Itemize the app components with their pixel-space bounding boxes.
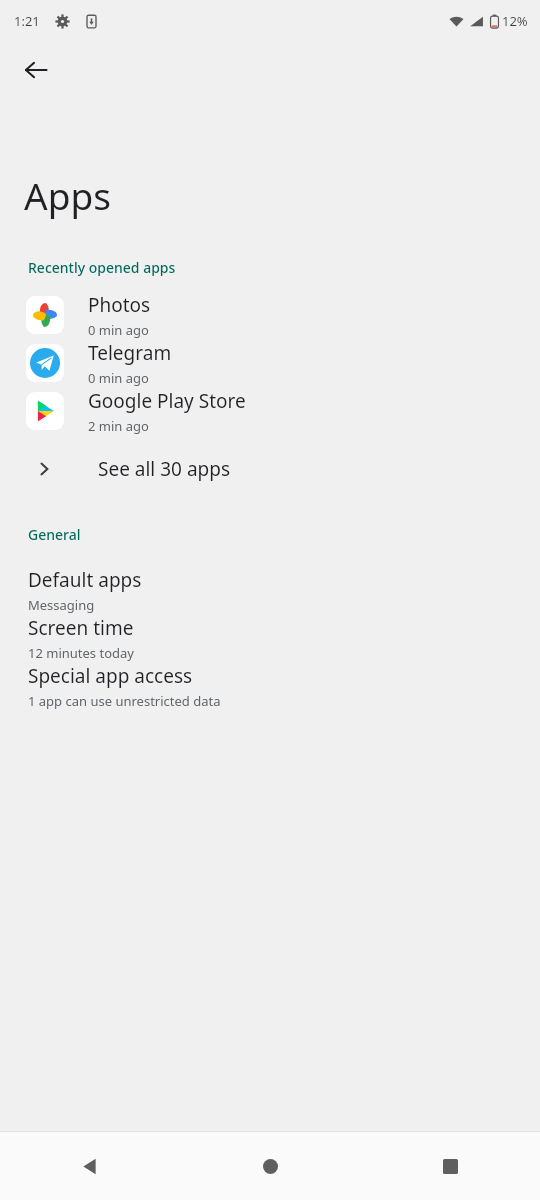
staticText: 1:21 — [14, 12, 40, 30]
button[interactable]: Google Play Store — [0, 387, 540, 435]
button[interactable]: Screen time — [0, 614, 540, 662]
staticText: 0 min ago — [88, 321, 149, 339]
staticText: Special app access — [28, 663, 193, 689]
staticText: Recently opened apps — [28, 258, 176, 277]
button[interactable]: See all 30 apps — [0, 435, 540, 503]
staticText: 12% — [502, 12, 528, 30]
staticText: Messaging — [28, 596, 95, 614]
staticText: Photos — [88, 292, 151, 318]
staticText: See all 30 apps — [98, 456, 231, 482]
staticText: 12 minutes today — [28, 644, 134, 662]
staticText: 2 min ago — [88, 417, 149, 435]
staticText: Apps — [24, 170, 111, 220]
button[interactable]: Special app access — [0, 662, 540, 710]
button[interactable]: Photos — [0, 291, 540, 339]
staticText: Screen time — [28, 615, 134, 641]
button[interactable]: Home — [180, 1132, 360, 1200]
staticText: Default apps — [28, 567, 142, 593]
staticText: General — [28, 525, 81, 544]
button[interactable]: Back — [12, 46, 60, 94]
staticText: 1 app can use unrestricted data — [28, 692, 221, 710]
button[interactable]: Recent apps — [360, 1132, 540, 1200]
staticText: Telegram — [88, 340, 172, 366]
button[interactable]: Telegram — [0, 339, 540, 387]
button[interactable]: Default apps — [0, 566, 540, 614]
staticText: 0 min ago — [88, 369, 149, 387]
staticText: Google Play Store — [88, 388, 246, 414]
button[interactable]: Back — [0, 1132, 180, 1200]
